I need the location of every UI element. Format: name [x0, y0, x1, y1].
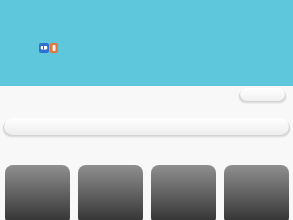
button[interactable]: Card 3 [151, 165, 216, 220]
button[interactable]: Card 1 [5, 165, 70, 220]
button[interactable]: Search [4, 118, 289, 135]
button[interactable]: Card 2 [78, 165, 143, 220]
button[interactable]: Card 4 [224, 165, 289, 220]
button[interactable]: Action [240, 88, 285, 101]
button[interactable]: Shortcuts [39, 43, 58, 53]
